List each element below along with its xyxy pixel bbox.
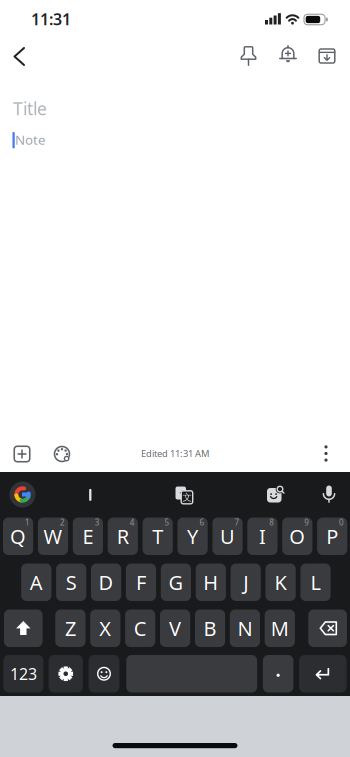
button[interactable]: E xyxy=(73,517,103,555)
staticText: Z xyxy=(65,615,76,642)
button[interactable]: F xyxy=(126,563,156,601)
staticText: V xyxy=(169,615,181,642)
button[interactable]: L xyxy=(300,563,331,601)
button[interactable] xyxy=(263,655,293,692)
button[interactable]: Q xyxy=(3,517,33,555)
staticText: Q xyxy=(10,523,26,550)
button[interactable]: X xyxy=(90,609,120,647)
staticText: C xyxy=(134,615,147,642)
staticText: N xyxy=(237,615,252,642)
staticText: P xyxy=(326,523,338,550)
staticText: E xyxy=(82,523,93,550)
button[interactable] xyxy=(262,481,288,507)
staticText: I xyxy=(259,523,266,550)
button[interactable]: K xyxy=(265,563,296,601)
button[interactable]: C xyxy=(125,609,155,647)
button[interactable] xyxy=(312,41,342,71)
staticText: 123 xyxy=(10,663,37,684)
button[interactable]: J xyxy=(231,563,261,601)
staticText: J xyxy=(243,569,248,596)
staticText: 5 xyxy=(165,517,170,528)
staticText: Edited 11:31 AM xyxy=(141,447,209,460)
staticText: F xyxy=(136,569,146,596)
staticText: G xyxy=(168,569,183,596)
staticText: R xyxy=(117,523,129,550)
staticText: 7 xyxy=(234,517,239,528)
button[interactable] xyxy=(4,41,34,71)
button[interactable]: T xyxy=(143,517,173,555)
staticText: 11:31 xyxy=(31,8,71,30)
button[interactable]: U xyxy=(212,517,243,555)
button[interactable]: D xyxy=(91,563,121,601)
staticText: U xyxy=(220,523,235,550)
button[interactable]: Z xyxy=(55,609,85,647)
button[interactable] xyxy=(299,655,347,692)
button[interactable] xyxy=(47,439,77,469)
staticText: Note xyxy=(15,131,46,148)
button[interactable]: B xyxy=(195,609,225,647)
staticText: 4 xyxy=(130,517,135,528)
staticText: X xyxy=(99,615,111,642)
button[interactable] xyxy=(89,655,119,692)
staticText: 0 xyxy=(339,517,344,528)
staticText: 3 xyxy=(95,517,100,528)
staticText: L xyxy=(310,569,320,596)
staticText: T xyxy=(152,523,163,550)
staticText: A xyxy=(30,569,43,596)
button[interactable]: H xyxy=(196,563,226,601)
button[interactable]: A xyxy=(21,563,51,601)
staticText: 6 xyxy=(199,517,204,528)
button[interactable] xyxy=(233,41,263,71)
button[interactable] xyxy=(4,609,43,647)
button[interactable]: O xyxy=(282,517,312,555)
staticText: M xyxy=(271,615,289,642)
button[interactable] xyxy=(314,438,338,468)
button[interactable]: W xyxy=(38,517,68,555)
staticText: 文 xyxy=(182,492,191,503)
button[interactable]: I xyxy=(247,517,277,555)
staticText: O xyxy=(289,523,305,550)
button[interactable]: M xyxy=(265,609,295,647)
button[interactable] xyxy=(7,439,37,469)
button[interactable] xyxy=(308,609,347,647)
staticText: Title xyxy=(13,97,47,120)
staticText: S xyxy=(66,569,77,596)
button[interactable]: 文 xyxy=(171,482,197,508)
staticText: W xyxy=(43,523,62,550)
button[interactable] xyxy=(273,41,303,71)
staticText: 9 xyxy=(304,517,309,528)
button[interactable]: P xyxy=(317,517,347,555)
staticText: 8 xyxy=(269,517,274,528)
staticText: 1 xyxy=(25,517,30,528)
button[interactable]: R xyxy=(108,517,138,555)
button[interactable]: N xyxy=(230,609,260,647)
button[interactable]: Y xyxy=(177,517,208,555)
button[interactable]: S xyxy=(56,563,86,601)
staticText: H xyxy=(203,569,218,596)
button[interactable] xyxy=(316,481,342,507)
staticText: Y xyxy=(187,523,198,550)
staticText: B xyxy=(203,615,216,642)
staticText: 2 xyxy=(60,517,65,528)
button[interactable]: 123 xyxy=(3,655,43,692)
button[interactable]: V xyxy=(160,609,190,647)
staticText: K xyxy=(275,569,287,596)
staticText: D xyxy=(99,569,114,596)
button[interactable]: G xyxy=(161,563,191,601)
button[interactable] xyxy=(5,477,39,511)
button[interactable] xyxy=(49,655,83,692)
